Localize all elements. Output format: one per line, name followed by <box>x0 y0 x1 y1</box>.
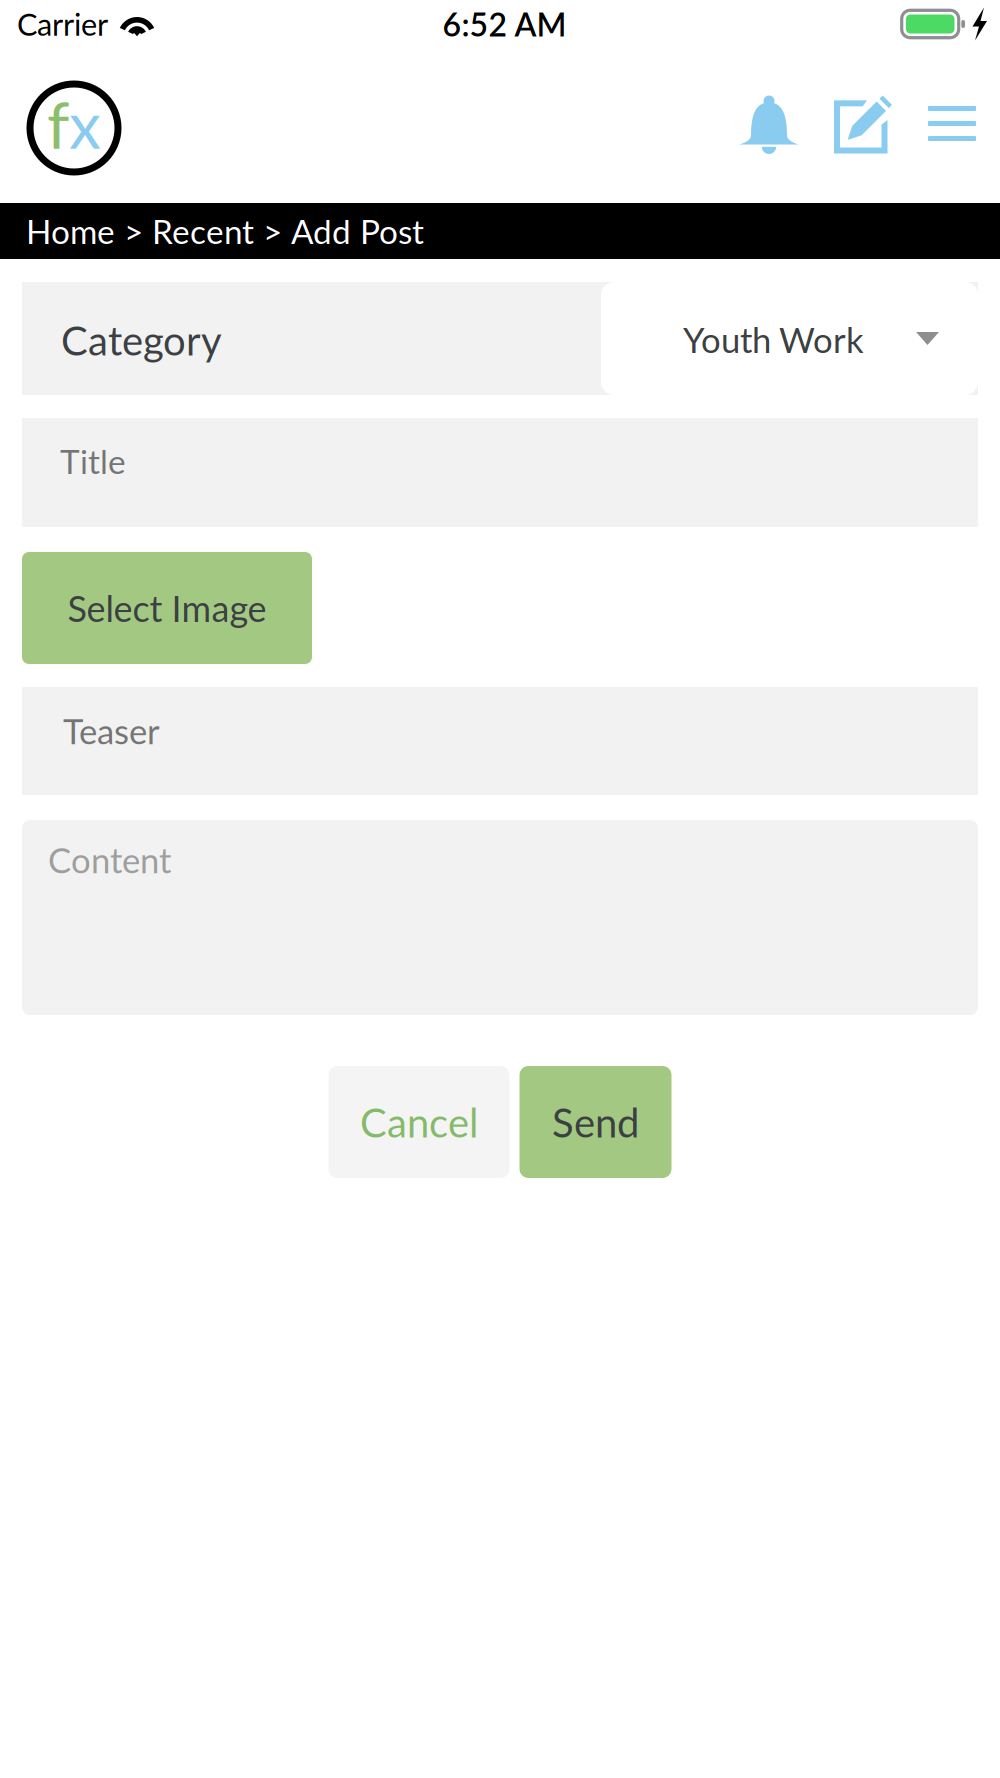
staticText: Cancel <box>360 1098 478 1146</box>
staticText: Recent <box>152 211 254 251</box>
staticText: x <box>69 86 101 162</box>
button[interactable]: fx home <box>0 80 132 203</box>
button[interactable]: Recent <box>152 211 254 251</box>
button[interactable]: Send <box>519 1066 671 1178</box>
button[interactable]: Category: Youth Work <box>22 282 978 395</box>
button[interactable]: Menu <box>928 85 976 226</box>
button[interactable]: Cancel <box>328 1066 509 1178</box>
button[interactable]: New post <box>834 95 892 215</box>
button[interactable]: Notifications <box>740 95 798 215</box>
staticText: Send <box>552 1098 639 1146</box>
staticText: Category <box>61 316 222 364</box>
staticText: > <box>115 211 152 251</box>
staticText: 6:52 AM <box>442 5 566 43</box>
staticText: Title <box>60 441 126 481</box>
button[interactable]: Select Image <box>22 552 312 664</box>
staticText: > <box>254 211 291 251</box>
staticText: Teaser <box>63 710 160 752</box>
staticText: f <box>47 86 69 162</box>
staticText: Carrier <box>17 6 108 42</box>
staticText: Home <box>26 211 115 251</box>
button[interactable]: Home <box>26 211 115 251</box>
staticText: Youth Work <box>683 319 864 360</box>
staticText: Content <box>48 839 171 881</box>
staticText: Select Image <box>67 586 266 630</box>
staticText: Add Post <box>291 211 424 251</box>
